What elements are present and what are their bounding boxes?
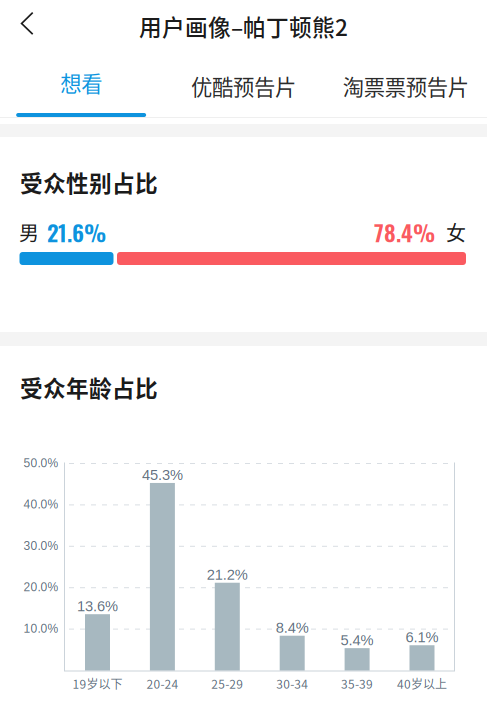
staticText: 30.0%: [23, 539, 58, 552]
staticText: 想看: [60, 67, 102, 98]
staticText: 淘票票预告片: [343, 71, 469, 101]
staticText: 45.3%: [142, 467, 183, 483]
staticText: 19岁以下: [72, 675, 122, 692]
staticText: 35-39: [341, 675, 373, 692]
staticText: 13.6%: [77, 598, 118, 614]
staticText: 20-24: [146, 675, 178, 692]
staticText: 21.2%: [207, 566, 248, 583]
staticText: 用户画像–帕丁顿熊2: [139, 10, 348, 42]
staticText: 5.4%: [341, 632, 374, 648]
staticText: 30-34: [276, 675, 308, 692]
staticText: 20.0%: [23, 580, 58, 594]
button[interactable]: Back: [0, 0, 48, 48]
staticText: 21.6%: [47, 215, 106, 249]
button[interactable]: 淘票票预告片: [325, 61, 487, 117]
staticText: 男: [19, 217, 39, 246]
staticText: 25-29: [211, 675, 243, 692]
staticText: 受众年龄占比: [20, 371, 158, 403]
staticText: 78.4%: [374, 215, 435, 249]
staticText: 女: [446, 217, 466, 246]
staticText: 50.0%: [23, 456, 58, 470]
button[interactable]: 优酷预告片: [162, 61, 325, 117]
staticText: 40.0%: [23, 498, 58, 511]
staticText: 6.1%: [405, 629, 438, 645]
staticText: 10.0%: [23, 622, 58, 635]
button[interactable]: 想看: [0, 61, 162, 117]
staticText: 受众性别占比: [20, 166, 158, 198]
staticText: 优酷预告片: [191, 71, 296, 101]
staticText: 8.4%: [276, 619, 309, 636]
staticText: 40岁以上: [397, 675, 447, 692]
